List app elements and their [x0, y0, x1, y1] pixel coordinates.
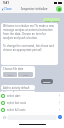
staticText: 9:41: [3, 1, 9, 5]
staticText: Choose file date: [3, 67, 24, 71]
button[interactable]: select start: [0, 92, 64, 99]
button[interactable]: select last costs: [0, 99, 64, 106]
button[interactable]: Add to activity default: [1, 85, 35, 90]
staticText: select full costs: [7, 108, 26, 112]
button[interactable]: Welcome to initialize me! To make a new …: [1, 23, 58, 65]
staticText: Add to activity default: [3, 86, 30, 90]
staticText: select start: [7, 94, 21, 98]
button[interactable]: select full costs: [0, 106, 64, 113]
button[interactable]: May: [3, 72, 17, 77]
button[interactable]: June: [18, 72, 33, 77]
button[interactable]: Agent online: [43, 18, 60, 22]
button[interactable]: Send: [58, 115, 62, 119]
staticText: June: [23, 73, 28, 76]
staticText: March: [43, 80, 51, 83]
staticText: Welcome to initialize me! To make a new …: [3, 24, 56, 52]
button[interactable]: Close: [0, 5, 13, 13]
staticText: Close: [4, 7, 12, 11]
staticText: select last costs: [7, 101, 26, 105]
button[interactable]: Choose file date: [1, 66, 35, 78]
staticText: Inspector initialize: [21, 7, 48, 11]
button[interactable]: Choose Category: [1, 91, 35, 92]
staticText: Agent online: [44, 19, 60, 22]
staticText: May: [8, 73, 13, 76]
button[interactable]: Profile: [56, 6, 62, 12]
button[interactable]: March: [41, 79, 53, 84]
staticText: Choose Category: [3, 91, 24, 92]
button[interactable]: Attach file: [2, 115, 6, 119]
